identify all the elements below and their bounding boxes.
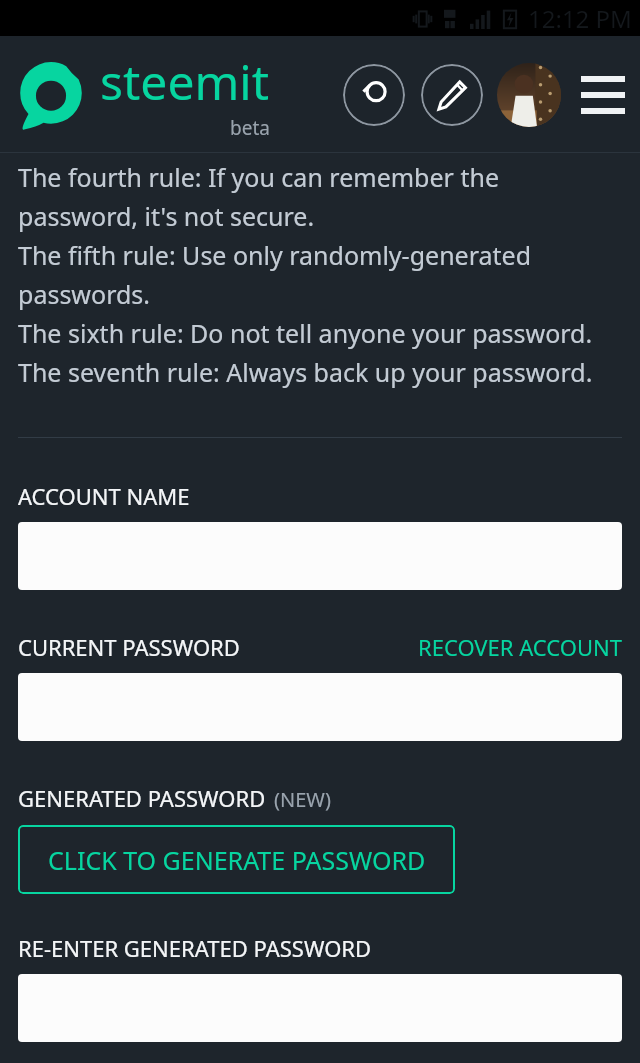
staticText: CLICK TO GENERATE PASSWORD [48, 843, 426, 877]
button[interactable]: Profile [497, 63, 561, 127]
button[interactable]: Text input [18, 673, 622, 741]
staticText: The fifth rule: Use only randomly-genera… [18, 238, 532, 272]
button[interactable]: Text input [18, 522, 622, 590]
staticText: GENERATED PASSWORD [18, 783, 266, 813]
staticText: The sixth rule: Do not tell anyone your … [18, 316, 593, 350]
staticText: The seventh rule: Always back up your pa… [18, 355, 593, 389]
button[interactable]: Menu [576, 68, 630, 122]
staticText: beta [230, 115, 270, 141]
staticText: password, it's not secure. [18, 199, 315, 233]
staticText: RECOVER ACCOUNT [418, 632, 622, 662]
staticText: 12:12 PM [528, 2, 632, 35]
button[interactable]: Write post [421, 64, 483, 126]
staticText: passwords. [18, 277, 151, 311]
staticText: steemit [100, 49, 270, 114]
button[interactable]: Search [343, 64, 405, 126]
staticText: RE-ENTER GENERATED PASSWORD [18, 933, 372, 963]
staticText: (NEW) [274, 786, 331, 813]
staticText: ACCOUNT NAME [18, 481, 190, 511]
button[interactable]: Text input [18, 974, 622, 1042]
button[interactable]: CLICK TO GENERATE PASSWORD [18, 825, 455, 894]
button[interactable]: Steemit home [16, 49, 270, 141]
staticText: CURRENT PASSWORD [18, 632, 240, 662]
button[interactable]: RECOVER ACCOUNT [418, 632, 622, 662]
staticText: The fourth rule: If you can remember the [18, 160, 499, 194]
